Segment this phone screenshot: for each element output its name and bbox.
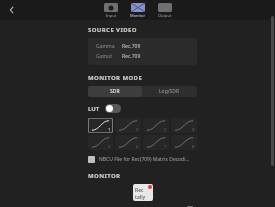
staticText: Rec: [135, 187, 144, 194]
staticText: 5: [108, 144, 111, 149]
staticText: Rec.709: [122, 53, 141, 60]
button[interactable]: Rec tally: [133, 184, 153, 201]
button[interactable]: 7: [143, 135, 169, 150]
button[interactable]: Log/SDR: [142, 86, 197, 97]
staticText: Rec.709: [122, 43, 141, 50]
button[interactable]: Output: [156, 3, 174, 18]
staticText: Log/SDR: [159, 88, 180, 95]
button[interactable]: Input: [102, 3, 120, 18]
button[interactable]: 6: [115, 135, 141, 150]
button[interactable]: 2: [115, 118, 141, 133]
button[interactable]: 5: [88, 135, 113, 150]
staticText: SOURCE VIDEO: [88, 26, 137, 34]
button[interactable]: 4: [171, 118, 197, 133]
button[interactable]: NBCU File for Rec(709) Matrix Decodi…: [88, 156, 197, 163]
staticText: tally: [135, 194, 146, 201]
button[interactable]: Back: [4, 2, 20, 18]
button[interactable]: 1: [88, 118, 113, 133]
staticText: 6: [136, 144, 139, 149]
button[interactable]: LUT: [88, 104, 121, 113]
staticText: 1: [108, 127, 111, 132]
button[interactable]: Toggle: [105, 104, 121, 113]
button[interactable]: SDR: [88, 86, 142, 97]
button[interactable]: 8: [171, 135, 197, 150]
staticText: LUT: [88, 105, 100, 113]
button[interactable]: 3: [143, 118, 169, 133]
staticText: 3: [164, 127, 167, 132]
staticText: Gamut: [96, 53, 113, 60]
staticText: 4: [192, 127, 195, 132]
staticText: Gamma: [96, 43, 115, 50]
staticText: NBCU File for Rec(709) Matrix Decodi…: [99, 156, 190, 163]
staticText: 8: [192, 144, 195, 149]
staticText: 2: [136, 127, 139, 132]
button[interactable]: Gamma: [88, 38, 197, 65]
staticText: Output: [158, 13, 172, 18]
staticText: SDR: [110, 88, 120, 95]
staticText: MONITOR MODE: [88, 74, 143, 82]
staticText: MONITOR: [88, 172, 121, 180]
staticText: Input: [106, 13, 117, 18]
staticText: 7: [164, 144, 167, 149]
staticText: Monitor: [130, 13, 146, 18]
button[interactable]: Monitor: [128, 3, 148, 18]
